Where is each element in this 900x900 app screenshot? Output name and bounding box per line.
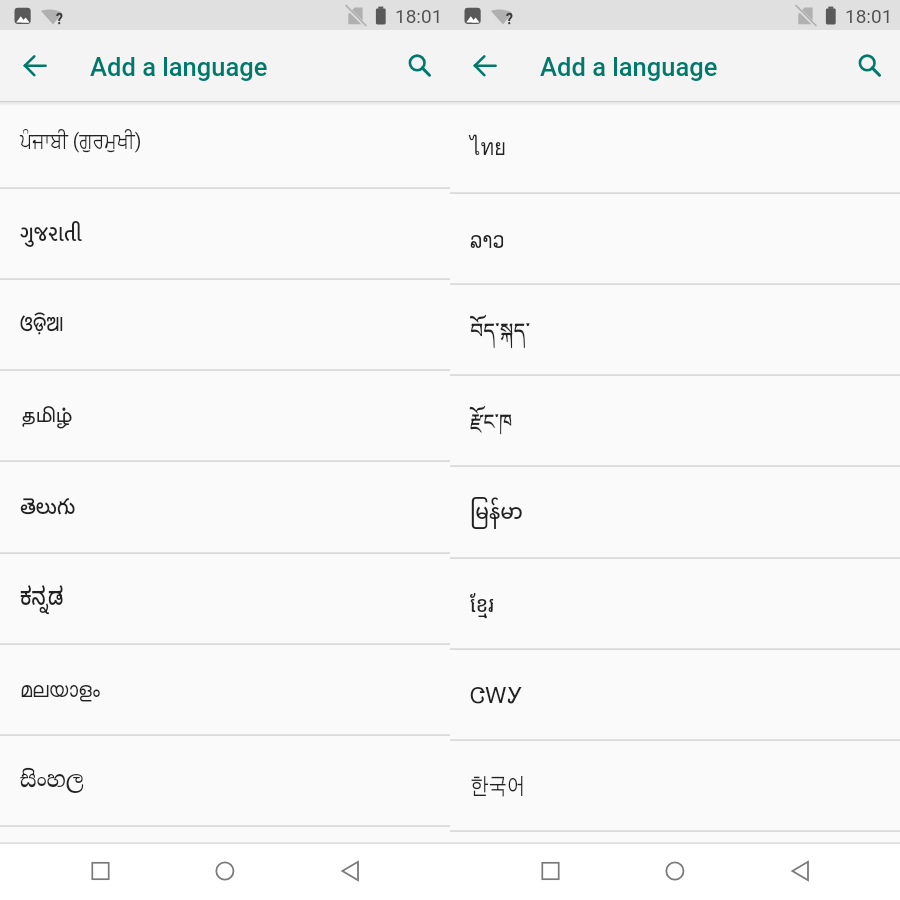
button[interactable]: தமிழ் (0, 371, 450, 462)
staticText: ਪੰਜਾਬੀ (ਗੁਰਮੁਖੀ) (20, 129, 142, 154)
staticText: ខ្មែរ (470, 588, 495, 619)
button[interactable]: རྫོང་ཁ (450, 376, 900, 467)
staticText: සිංහල (20, 765, 84, 794)
staticText: ? (506, 11, 513, 27)
button[interactable]: Back (11, 42, 59, 90)
button[interactable]: ગુજરાતી (0, 189, 450, 280)
button[interactable]: ਪੰਜਾਬੀ (ਗੁਰਮੁਖੀ) (0, 101, 450, 189)
button[interactable]: မြန်မာ (450, 467, 900, 559)
staticText: ไทย (470, 129, 507, 165)
button[interactable]: Back (461, 42, 509, 90)
button[interactable]: ಕನ್ನಡ (0, 554, 450, 645)
staticText: ଓଡ଼ିଆ (20, 308, 63, 337)
button[interactable]: ລາວ (450, 194, 900, 285)
staticText: ಕನ್ನಡ (20, 584, 63, 618)
button[interactable]: සිංහල (0, 736, 450, 827)
button[interactable]: ଓଡ଼ିଆ (0, 280, 450, 371)
staticText: Add a language (90, 52, 268, 82)
staticText: မြန်မာ (470, 489, 524, 538)
staticText: தமிழ் (20, 404, 72, 427)
staticText: 18:01 (845, 5, 893, 27)
button[interactable]: Search (399, 42, 447, 90)
staticText: 18:01 (395, 5, 443, 27)
staticText: རྫོང་ཁ (470, 397, 513, 458)
button[interactable]: తెలుగు (0, 462, 450, 554)
button[interactable]: 한국어 (450, 741, 900, 832)
button[interactable]: བོད་སྐད་ (450, 285, 900, 376)
button[interactable]: ខ្មែរ (450, 559, 900, 650)
staticText: ગુજરાતી (20, 216, 82, 253)
button[interactable]: ᏣᎳᎩ (450, 650, 900, 741)
staticText: བོད་སྐད་ (470, 306, 531, 367)
button[interactable]: Search (849, 42, 897, 90)
staticText: 한국어 (470, 771, 526, 799)
staticText: ? (56, 11, 63, 27)
staticText: ລາວ (470, 227, 504, 253)
button[interactable]: ไทย (450, 101, 900, 194)
staticText: Add a language (540, 52, 718, 82)
staticText: ᏣᎳᎩ (470, 685, 523, 708)
button[interactable]: മലയാളം (0, 645, 450, 736)
staticText: മലയാളം (20, 679, 101, 702)
staticText: తెలుగు (20, 494, 76, 524)
